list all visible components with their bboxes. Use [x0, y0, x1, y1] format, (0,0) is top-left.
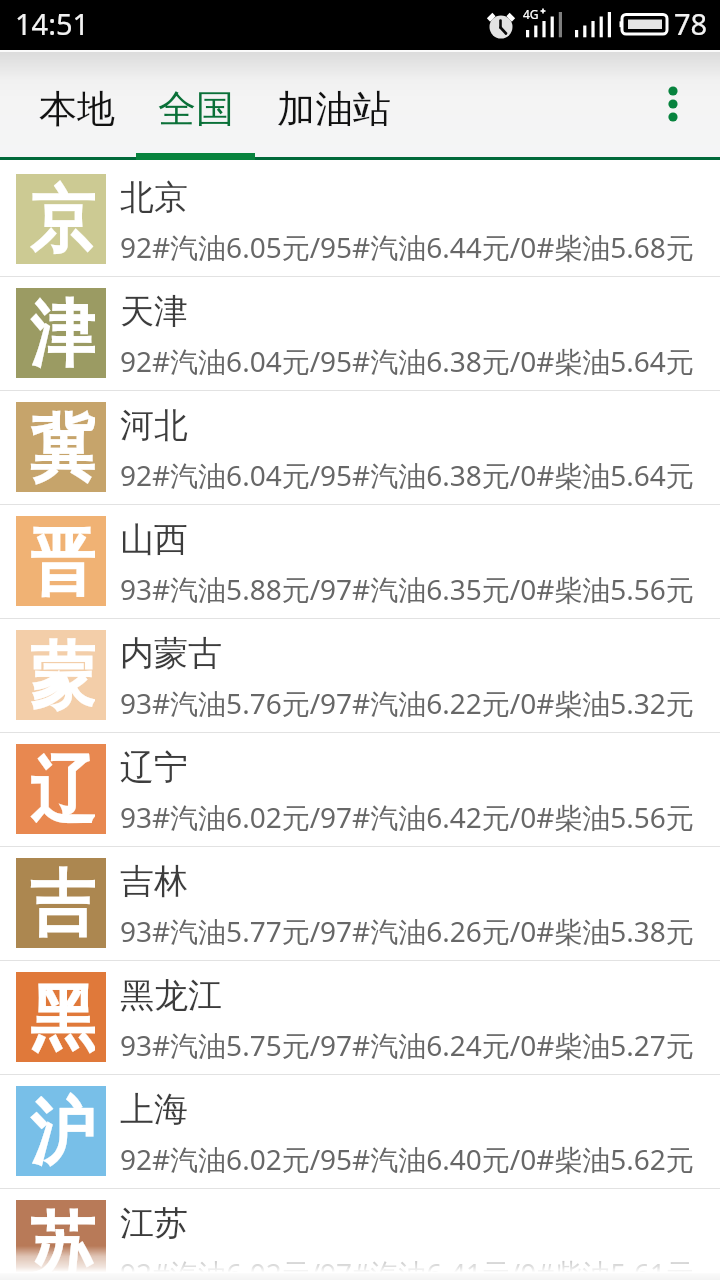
staticText: 黑龙江 — [120, 974, 222, 1017]
staticText: 黑 — [30, 974, 95, 1064]
staticText: 本地 — [39, 85, 115, 133]
button[interactable]: 苏 — [0, 1189, 720, 1280]
staticText: 晋 — [30, 518, 95, 608]
staticText: 北京 — [120, 176, 188, 219]
button[interactable]: 冀 — [0, 391, 720, 505]
staticText: 河北 — [120, 404, 188, 447]
button[interactable]: 辽 — [0, 733, 720, 847]
button[interactable]: 蒙 — [0, 619, 720, 733]
button[interactable]: More options — [649, 80, 697, 128]
button[interactable]: 京 — [0, 163, 720, 277]
staticText: 全国 — [158, 85, 234, 133]
staticText: 辽宁 — [120, 746, 188, 789]
staticText: 冀 — [30, 404, 95, 494]
staticText: 津 — [30, 290, 95, 380]
staticText: 上海 — [120, 1088, 188, 1131]
staticText: 山西 — [120, 518, 188, 561]
staticText: 沪 — [30, 1088, 95, 1178]
staticText: 93#汽油5.76元/97#汽油6.22元/0#柴油5.32元 — [120, 684, 694, 722]
staticText: 14:51 — [15, 4, 90, 43]
staticText: 蒙 — [30, 632, 95, 722]
staticText: 92#汽油6.05元/95#汽油6.44元/0#柴油5.68元 — [120, 228, 694, 266]
staticText: 内蒙古 — [120, 632, 222, 675]
staticText: 93#汽油5.75元/97#汽油6.24元/0#柴油5.27元 — [120, 1026, 694, 1064]
staticText: 江苏 — [120, 1202, 188, 1245]
staticText: 京 — [30, 176, 95, 266]
staticText: 天津 — [120, 290, 188, 333]
button[interactable]: 晋 — [0, 505, 720, 619]
staticText: 78 — [674, 4, 708, 43]
staticText: 辽 — [30, 746, 95, 836]
staticText: 93#汽油6.02元/97#汽油6.42元/0#柴油5.56元 — [120, 798, 694, 836]
staticText: 92#汽油6.02元/95#汽油6.40元/0#柴油5.62元 — [120, 1140, 694, 1178]
button[interactable]: 全国 — [137, 57, 255, 160]
staticText: 92#汽油6.04元/95#汽油6.38元/0#柴油5.64元 — [120, 456, 694, 494]
button[interactable]: 津 — [0, 277, 720, 391]
staticText: 加油站 — [277, 85, 391, 133]
staticText: 92#汽油6.02元/97#汽油6.41元/0#柴油5.61元 — [120, 1254, 694, 1280]
staticText: 吉林 — [120, 860, 188, 903]
staticText: 苏 — [30, 1202, 95, 1280]
button[interactable]: 沪 — [0, 1075, 720, 1189]
button[interactable]: 黑 — [0, 961, 720, 1075]
button[interactable]: 加油站 — [256, 57, 412, 160]
button[interactable]: 吉 — [0, 847, 720, 961]
staticText: 93#汽油5.77元/97#汽油6.26元/0#柴油5.38元 — [120, 912, 694, 950]
staticText: 93#汽油5.88元/97#汽油6.35元/0#柴油5.56元 — [120, 570, 694, 608]
button[interactable]: 本地 — [18, 57, 136, 160]
staticText: 92#汽油6.04元/95#汽油6.38元/0#柴油5.64元 — [120, 342, 694, 380]
staticText: 吉 — [30, 860, 95, 950]
staticText: 4G — [523, 6, 539, 22]
